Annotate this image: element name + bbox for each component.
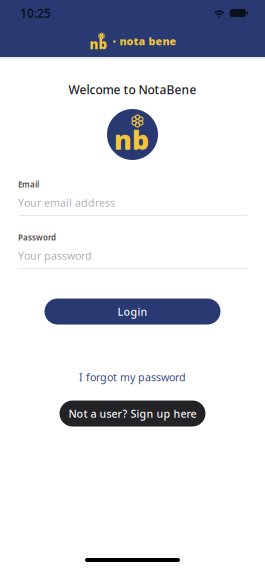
staticText: nb xyxy=(114,122,149,157)
staticText: Welcome to NotaBene xyxy=(68,81,196,97)
staticText: I forgot my password xyxy=(79,370,186,384)
staticText: Password xyxy=(18,232,56,243)
staticText: 10:25 xyxy=(20,5,51,21)
button[interactable]: Login xyxy=(44,298,220,324)
staticText: nb xyxy=(89,35,107,53)
staticText: nota bene xyxy=(119,34,176,48)
button[interactable]: Email xyxy=(0,180,265,216)
staticText: Not a user? Sign up here xyxy=(68,406,196,421)
staticText: Login xyxy=(117,304,147,319)
staticText: Your password xyxy=(18,248,92,263)
staticText: · xyxy=(112,33,115,49)
button[interactable]: Password xyxy=(0,233,265,269)
staticText: Your email address xyxy=(18,195,115,210)
staticText: Email xyxy=(18,179,39,190)
button[interactable]: I forgot my password xyxy=(79,371,186,382)
button[interactable]: Not a user? Sign up here xyxy=(59,400,205,426)
